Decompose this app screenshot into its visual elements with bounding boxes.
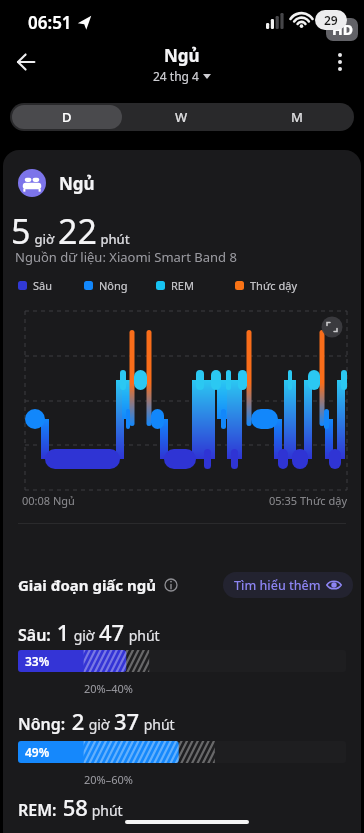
button[interactable] [8, 44, 44, 80]
staticText: giờ [31, 230, 58, 248]
staticText: phút [125, 626, 160, 645]
staticText: Sâu: [18, 624, 51, 646]
staticText: M [291, 108, 303, 126]
button[interactable] [322, 44, 358, 80]
staticText: Ngủ [164, 44, 200, 67]
staticText: phút [88, 801, 123, 820]
staticText: Tìm hiểu thêm [234, 577, 321, 594]
staticText: 2 [66, 706, 85, 736]
button[interactable]: W [124, 103, 239, 131]
staticText: 49% [25, 744, 50, 760]
staticText: giờ [85, 715, 114, 734]
staticText: REM: [18, 799, 57, 821]
staticText: 20%–40% [84, 681, 133, 696]
staticText: 22 [58, 208, 97, 248]
staticText: 20%–60% [84, 772, 133, 787]
button[interactable]: M [239, 103, 354, 131]
button[interactable]: Tìm hiểu thêm [223, 572, 353, 598]
staticText: 37 [114, 706, 140, 736]
staticText: REM [171, 278, 194, 293]
staticText: Giai đoạn giấc ngủ [18, 575, 156, 595]
button[interactable]: D [12, 105, 122, 129]
staticText: Sâu [33, 278, 53, 293]
staticText: giờ [70, 626, 99, 645]
staticText: 5 [11, 208, 31, 248]
staticText: 24 thg 4 [153, 68, 199, 84]
staticText: W [175, 108, 188, 126]
staticText: 58 [57, 792, 88, 822]
staticText: phút [97, 230, 130, 248]
staticText: HD [332, 20, 353, 39]
staticText: Nông: [18, 713, 66, 735]
staticText: Ngủ [59, 172, 95, 195]
staticText: D [62, 108, 72, 126]
staticText: phút [140, 715, 175, 734]
staticText: 47 [99, 617, 125, 647]
staticText: 00:08 Ngủ [22, 493, 75, 508]
staticText: 33% [25, 653, 50, 669]
staticText: 29 [324, 12, 338, 28]
button[interactable] [164, 578, 178, 592]
staticText: Nông [99, 278, 128, 293]
staticText: Thức dậy [250, 278, 298, 293]
staticText: Nguồn dữ liệu: Xiaomi Smart Band 8 [15, 248, 237, 266]
staticText: 05:35 Thức dậy [269, 493, 347, 508]
button[interactable] [3, 306, 361, 491]
staticText: 06:51 [28, 11, 72, 34]
staticText: 1 [51, 617, 70, 647]
